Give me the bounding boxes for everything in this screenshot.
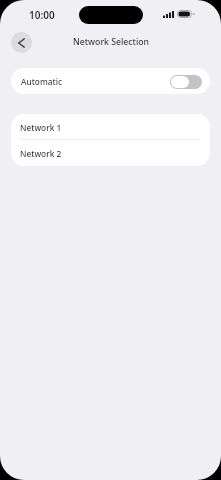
button[interactable]: Back bbox=[11, 32, 32, 53]
staticText: 10:00 bbox=[29, 8, 55, 22]
button[interactable]: Network 1 bbox=[11, 114, 210, 140]
staticText: Network Selection bbox=[73, 36, 149, 48]
button[interactable]: Automatic bbox=[11, 68, 210, 94]
button[interactable]: Automatic toggle bbox=[170, 75, 202, 89]
staticText: Network 1 bbox=[20, 122, 62, 133]
button[interactable]: Network 2 bbox=[11, 140, 210, 166]
staticText: Automatic bbox=[21, 76, 62, 87]
staticText: Network 2 bbox=[20, 148, 62, 159]
